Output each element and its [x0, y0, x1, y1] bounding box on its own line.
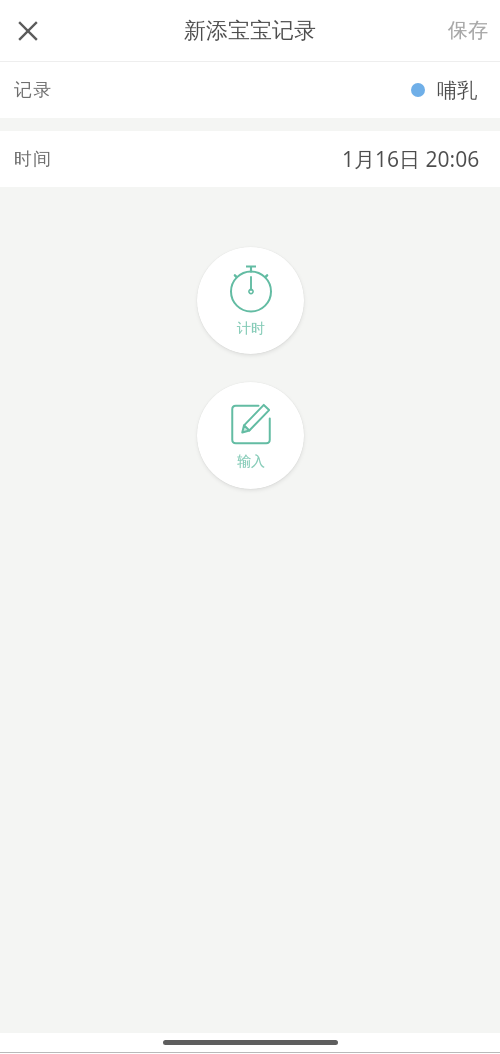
staticText: 时间 — [14, 148, 53, 171]
button[interactable]: 记录 — [0, 62, 500, 118]
button[interactable]: 保存 — [434, 8, 500, 53]
button[interactable]: 时间 — [0, 131, 500, 187]
staticText: 1月16日 20:06 — [342, 145, 480, 174]
button[interactable]: 输入 — [197, 382, 304, 489]
staticText: 保存 — [448, 18, 488, 43]
staticText: 计时 — [237, 320, 265, 338]
button[interactable]: 计时 — [197, 247, 304, 354]
staticText: 哺乳 — [437, 78, 477, 103]
staticText: 新添宝宝记录 — [184, 17, 316, 45]
button[interactable]: Close — [4, 7, 52, 55]
staticText: 输入 — [237, 453, 265, 471]
staticText: 记录 — [14, 79, 53, 102]
